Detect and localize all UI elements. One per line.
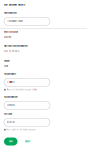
staticText: 1 Woodbury Road — [7, 20, 23, 22]
staticText: Sort code of the bank account — [7, 129, 36, 131]
staticText: Save — [9, 140, 13, 143]
staticText: Account Number — [4, 96, 18, 98]
button[interactable]: Cancel — [21, 137, 34, 145]
staticText: 00-00-00 — [7, 121, 15, 123]
staticText: Marital Status — [4, 31, 18, 33]
staticText: National Insurance Number — [4, 45, 28, 47]
button[interactable]: Save — [4, 137, 17, 145]
staticText: Edit personal details — [4, 3, 25, 6]
staticText: QQ 12 34 56 C — [4, 50, 19, 52]
button[interactable]: J Williams — [4, 78, 50, 86]
staticText: Gender — [4, 60, 10, 62]
staticText: J Williams — [7, 81, 15, 83]
staticText: Married — [4, 36, 11, 38]
staticText: Male — [4, 65, 8, 67]
staticText: Sort Code — [4, 113, 12, 115]
staticText: Account Name — [4, 73, 16, 75]
button[interactable]: 1 Woodbury Road — [4, 17, 50, 25]
staticText: 12345678 — [7, 104, 15, 106]
button[interactable]: 12345678 — [4, 101, 50, 109]
staticText: Cancel — [24, 140, 30, 143]
button[interactable]: 00-00-00 — [4, 118, 50, 126]
staticText: Home Address 1 — [4, 12, 17, 14]
staticText: Name of the bank account holder — [7, 89, 38, 91]
